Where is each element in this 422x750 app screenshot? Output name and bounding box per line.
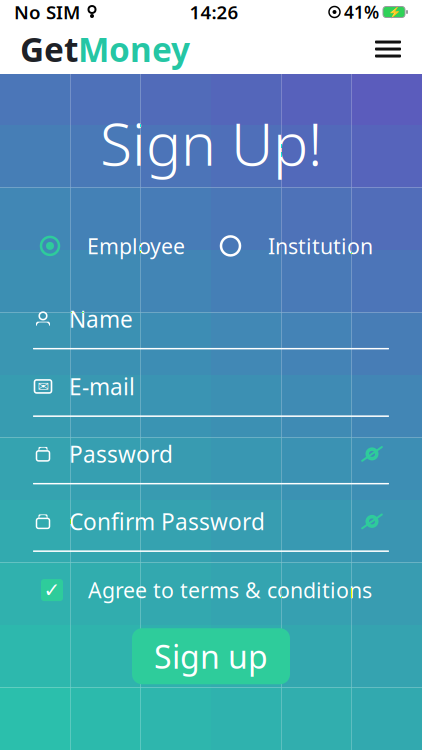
staticText: Employee (87, 232, 185, 260)
staticText: Money (78, 27, 190, 71)
staticText: ⚡ (387, 6, 400, 18)
button[interactable]: Employee (41, 226, 221, 266)
staticText: Agree to terms & conditions (88, 576, 372, 604)
staticText: Institution (268, 232, 373, 260)
staticText: Sign Up! (100, 104, 322, 182)
staticText: ✓ (43, 579, 60, 601)
button[interactable]: Show Confirm Password (355, 506, 389, 536)
staticText: Name (69, 304, 133, 334)
staticText: Get (20, 27, 78, 71)
staticText: ✉ (37, 379, 48, 394)
staticText: No SIM (14, 0, 80, 24)
button[interactable]: Institution (221, 226, 381, 266)
staticText: Sign up (154, 635, 268, 677)
staticText: E-mail (69, 371, 135, 401)
button[interactable]: Show Password (355, 439, 389, 469)
button[interactable]: Menu (368, 29, 408, 69)
button[interactable]: Sign up (132, 628, 290, 684)
staticText: Confirm Password (69, 506, 265, 536)
staticText: 14:26 (189, 0, 238, 24)
button[interactable]: Agree to terms and conditions (41, 579, 63, 601)
staticText: 41% (344, 0, 379, 23)
staticText: Password (69, 439, 173, 469)
